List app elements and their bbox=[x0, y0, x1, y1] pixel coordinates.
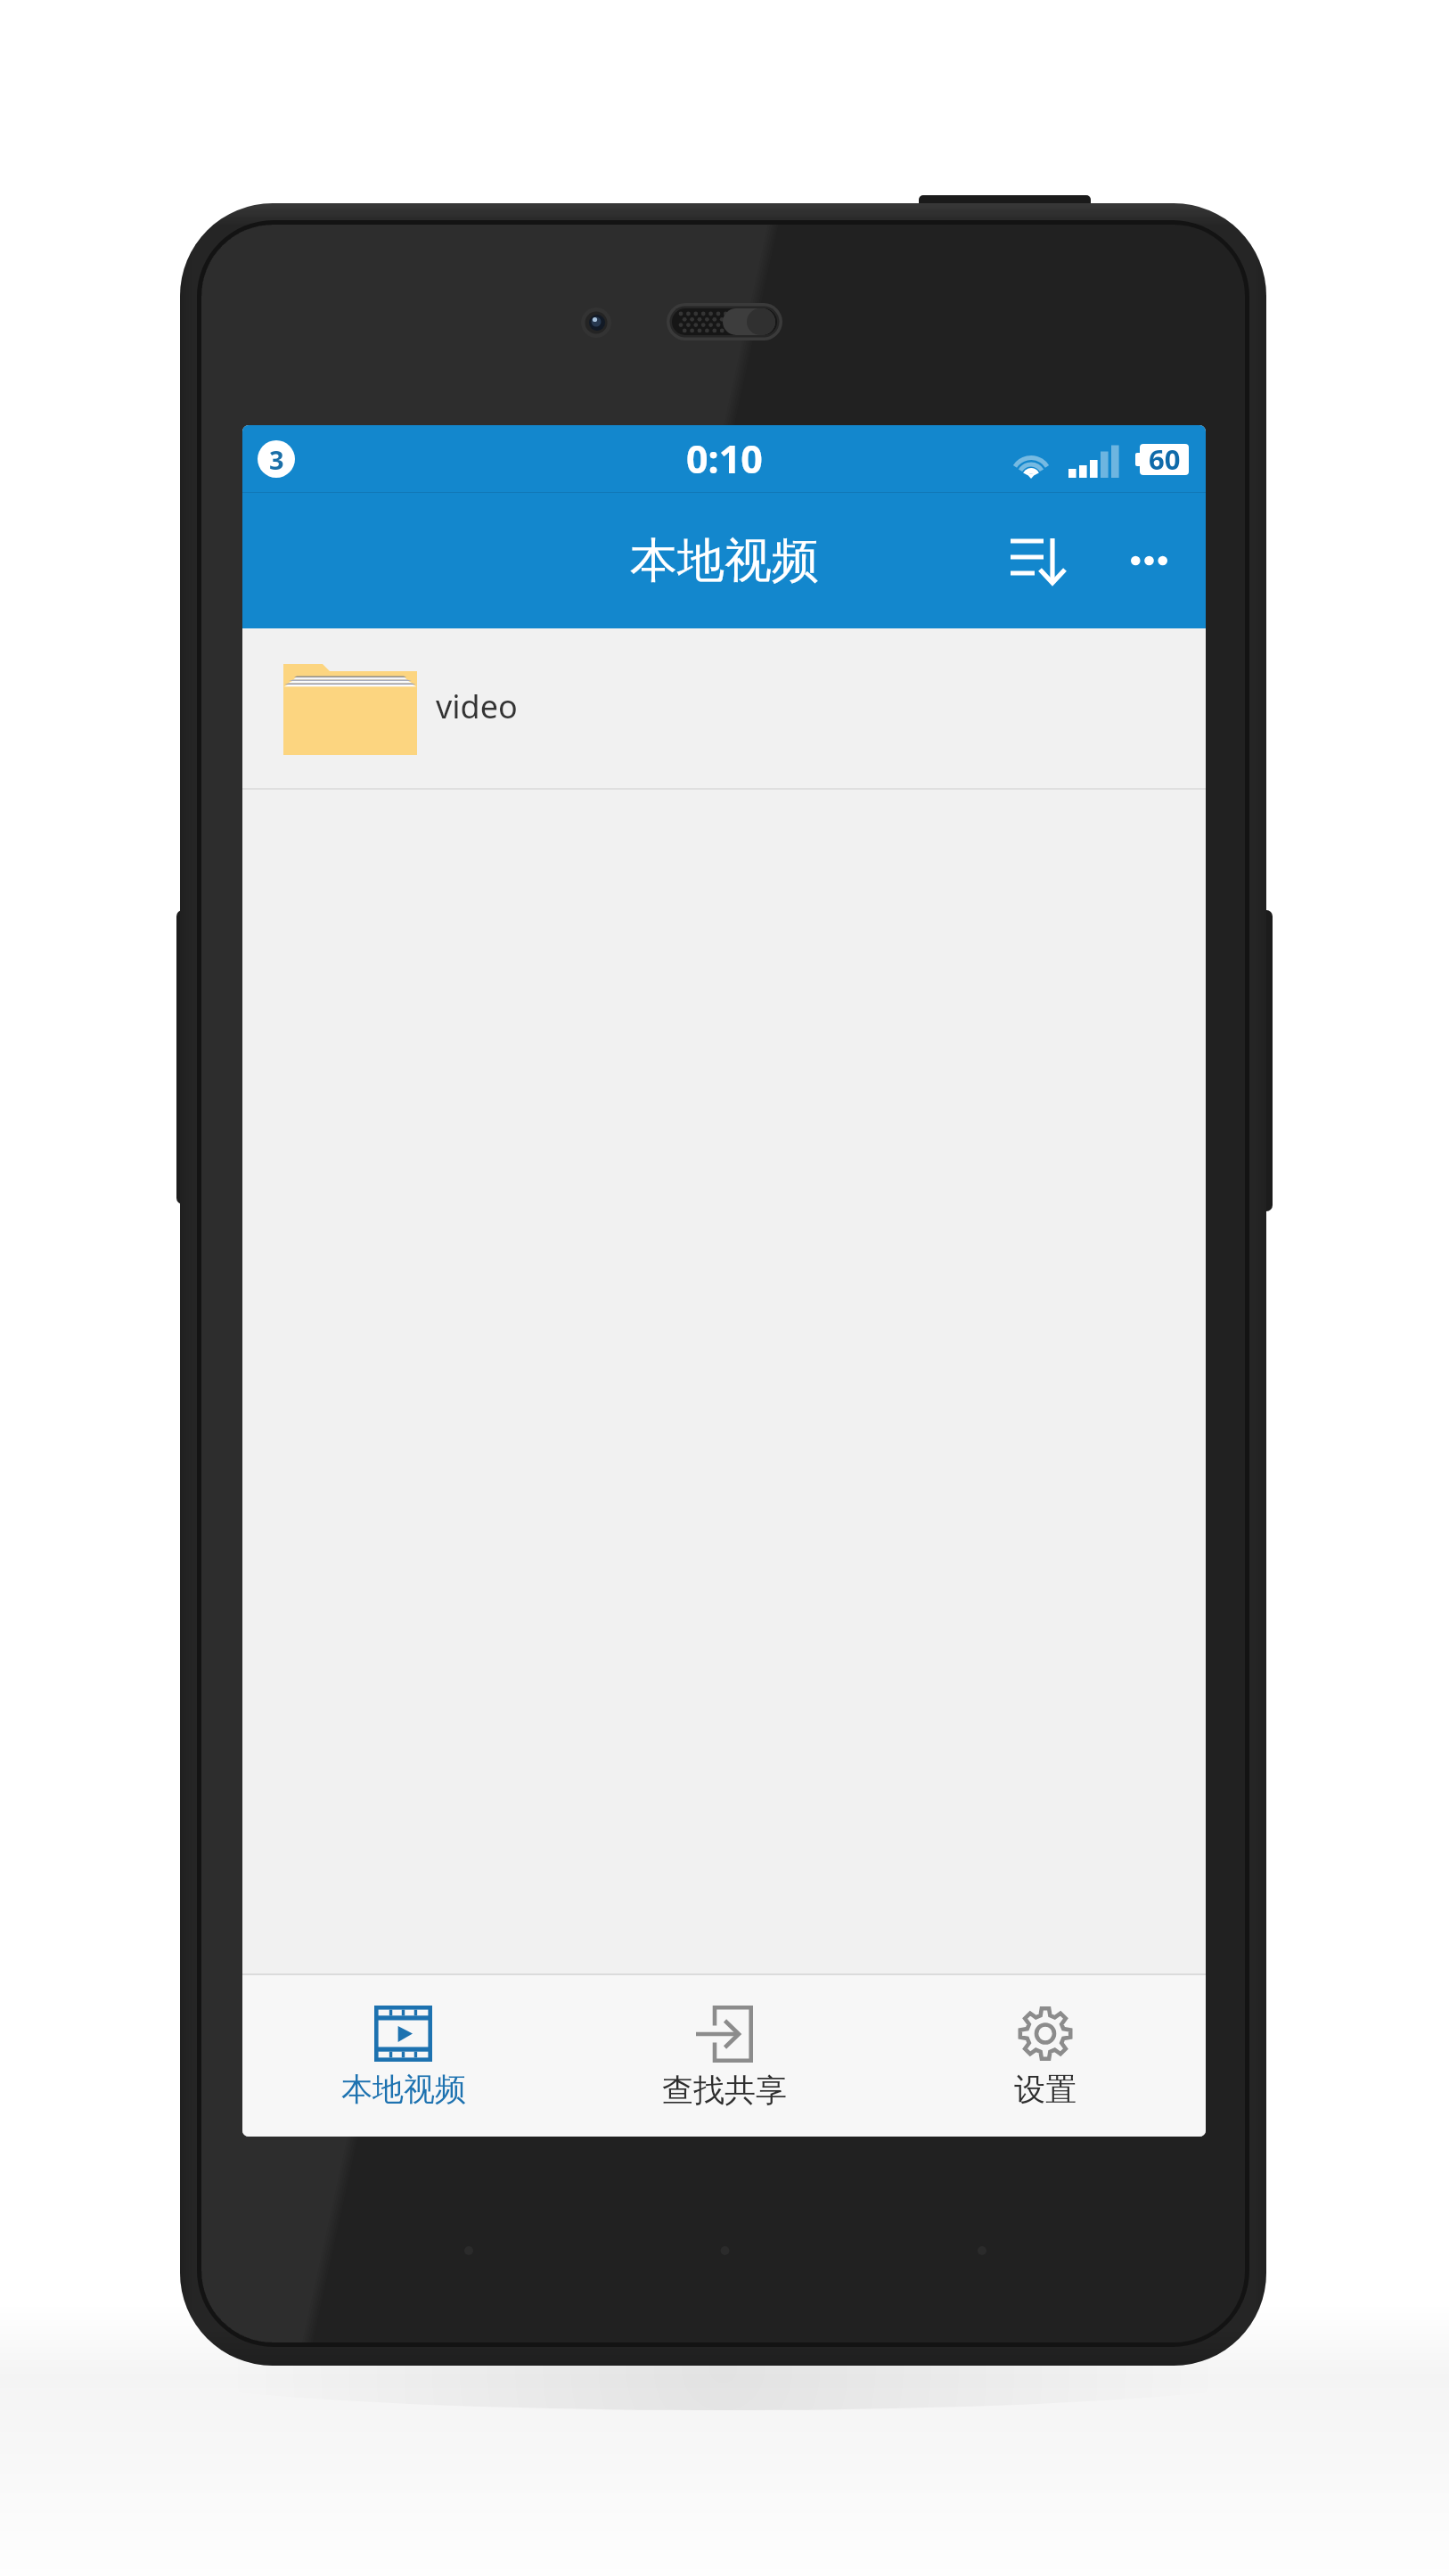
button[interactable]: video bbox=[242, 628, 1206, 790]
staticText: 60 bbox=[1149, 440, 1181, 478]
staticText: 本地视频 bbox=[341, 2070, 466, 2109]
button[interactable]: 本地视频 bbox=[242, 1975, 564, 2137]
staticText: video bbox=[436, 685, 518, 728]
button[interactable]: 查找共享 bbox=[564, 1975, 885, 2137]
button[interactable]: Sort bbox=[989, 493, 1103, 628]
staticText: 查找共享 bbox=[662, 2071, 787, 2110]
staticText: 设置 bbox=[1014, 2070, 1077, 2109]
staticText: 本地视频 bbox=[630, 531, 819, 591]
button[interactable]: 设置 bbox=[885, 1975, 1206, 2137]
staticText: 3 bbox=[269, 442, 284, 477]
button[interactable]: More options bbox=[1103, 493, 1195, 628]
staticText: 0:10 bbox=[686, 432, 763, 485]
